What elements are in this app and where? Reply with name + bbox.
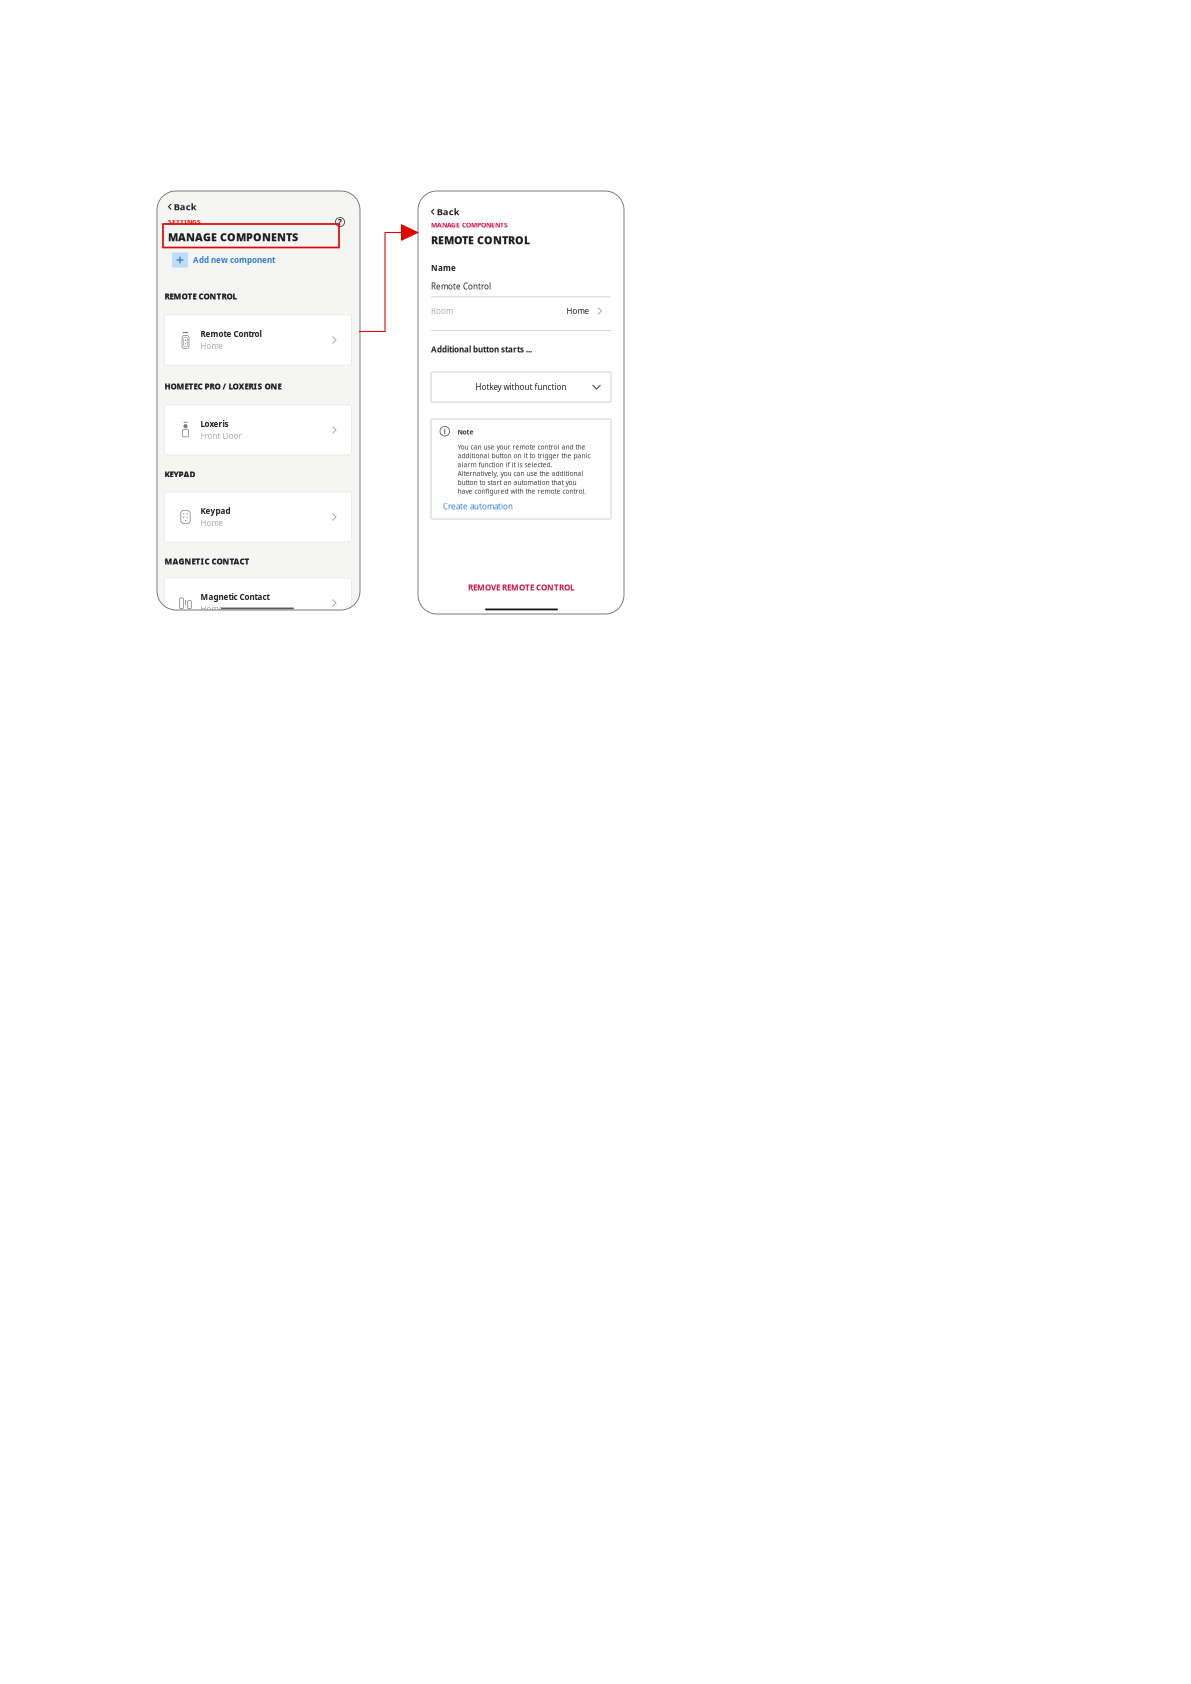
button[interactable]: Back	[430, 202, 461, 221]
button[interactable]: Create automation	[443, 501, 513, 512]
button[interactable]: Add new component	[172, 252, 275, 267]
staticText: MAGNETIC CONTACT	[164, 556, 249, 567]
staticText: have configured with the remote control.	[457, 487, 586, 496]
button[interactable]: REMOVE REMOTE CONTROL	[418, 582, 624, 593]
staticText: Home	[566, 306, 589, 316]
staticText: Home	[200, 604, 223, 614]
staticText: REMOVE REMOTE CONTROL	[468, 582, 574, 593]
staticText: MANAGE COMPONENTS	[168, 230, 298, 244]
staticText: additional button on it to trigger the p…	[457, 451, 590, 460]
staticText: Add new component	[193, 255, 275, 265]
staticText: Remote Control	[200, 329, 261, 339]
staticText: Hotkey without function	[475, 382, 566, 392]
staticText: Room	[431, 306, 453, 316]
button[interactable]: Remote Control	[164, 315, 351, 365]
staticText: Note	[457, 427, 473, 436]
button[interactable]: Loxeris	[164, 405, 351, 455]
staticText: Remote Control	[431, 281, 491, 292]
staticText: REMOTE CONTROL	[164, 291, 237, 302]
staticText: REMOTE CONTROL	[431, 233, 530, 247]
button[interactable]: Magnetic Contact	[164, 578, 351, 628]
staticText: Loxeris	[200, 419, 228, 429]
staticText: Back	[437, 205, 460, 218]
button[interactable]: Room	[431, 297, 602, 325]
staticText: Additional button starts ...	[431, 344, 532, 355]
staticText: HOMETEC PRO / LOXERIS ONE	[164, 381, 281, 392]
staticText: Create automation	[443, 501, 513, 512]
staticText: alarm function if it is selected.	[457, 460, 552, 469]
staticText: Magnetic Contact	[200, 592, 269, 602]
staticText: i	[444, 426, 446, 436]
staticText: Home	[200, 341, 223, 351]
button[interactable]: Keypad	[164, 492, 351, 542]
staticText: Front Door	[200, 431, 241, 441]
staticText: Back	[174, 200, 197, 213]
staticText: Name	[431, 262, 456, 273]
staticText: ?	[338, 217, 342, 227]
staticText: SETTINGS	[168, 217, 201, 226]
staticText: Alternatively, you can use the additiona…	[457, 469, 583, 478]
staticText: Home	[200, 518, 223, 528]
button[interactable]: Help	[335, 217, 345, 227]
button[interactable]: Back	[167, 197, 198, 216]
staticText: Keypad	[200, 506, 230, 516]
staticText: button to start an automation that you	[457, 478, 576, 487]
button[interactable]: Hotkey without function	[431, 372, 611, 402]
staticText: You can use your remote control and the	[457, 442, 585, 451]
staticText: MANAGE COMPONENTS	[431, 220, 508, 229]
staticText: KEYPAD	[164, 469, 195, 480]
